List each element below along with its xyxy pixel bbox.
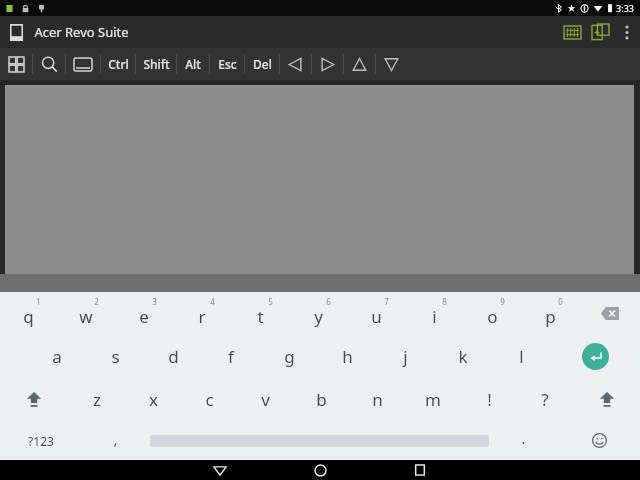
staticText: 0 <box>558 296 563 307</box>
staticText: t <box>257 305 264 328</box>
staticText: 6 <box>326 296 331 307</box>
button[interactable]: Home <box>270 460 370 480</box>
staticText: Alt <box>185 56 201 72</box>
button[interactable]: Up <box>344 48 375 80</box>
staticText: 4 <box>210 296 215 307</box>
staticText: ?123 <box>28 433 54 449</box>
button[interactable]: Search <box>33 48 65 80</box>
button[interactable]: Alt <box>177 48 209 80</box>
staticText: u <box>371 305 382 328</box>
staticText: Acer Revo Suite <box>34 23 129 41</box>
button[interactable]: i <box>405 292 463 335</box>
staticText: l <box>519 345 524 368</box>
button[interactable]: Emoji <box>558 421 640 460</box>
staticText: Ctrl <box>108 56 129 72</box>
button[interactable]: Keyboard <box>558 18 586 46</box>
button[interactable]: w <box>57 292 115 335</box>
staticText: d <box>168 345 179 368</box>
button[interactable]: , <box>81 421 150 460</box>
button[interactable]: o <box>463 292 521 335</box>
staticText: 3 <box>152 296 157 307</box>
button[interactable]: u <box>347 292 405 335</box>
button[interactable]: z <box>68 378 125 421</box>
staticText: Shift <box>143 56 170 72</box>
button[interactable]: Left <box>280 48 311 80</box>
staticText: 2 <box>94 296 99 307</box>
button[interactable]: Esc <box>210 48 244 80</box>
button[interactable]: p <box>521 292 579 335</box>
button[interactable]: Window <box>66 48 100 80</box>
staticText: w <box>79 305 93 328</box>
staticText: s <box>111 345 120 368</box>
button[interactable]: f <box>202 335 260 378</box>
button[interactable]: ?123 <box>0 421 81 460</box>
staticText: k <box>458 345 468 368</box>
button[interactable]: d <box>144 335 202 378</box>
button[interactable]: e <box>115 292 173 335</box>
button[interactable]: Shift <box>0 378 68 421</box>
button[interactable]: Back <box>170 460 270 480</box>
button[interactable]: l <box>492 335 550 378</box>
staticText: n <box>372 388 383 411</box>
button[interactable]: s <box>86 335 144 378</box>
button[interactable]: Down <box>376 48 407 80</box>
staticText: Esc <box>218 56 237 72</box>
button[interactable]: b <box>293 378 349 421</box>
staticText: 8 <box>442 296 447 307</box>
button[interactable]: Apps <box>0 48 32 80</box>
staticText: , <box>113 429 118 449</box>
button[interactable]: Del <box>245 48 279 80</box>
staticText: v <box>261 388 270 411</box>
staticText: g <box>284 345 295 368</box>
button[interactable]: h <box>318 335 376 378</box>
button[interactable]: Shift <box>136 48 176 80</box>
button[interactable]: More options <box>614 19 640 45</box>
button[interactable]: Enter <box>550 335 640 378</box>
staticText: i <box>432 305 437 328</box>
button[interactable]: k <box>434 335 492 378</box>
staticText: b <box>316 388 327 411</box>
staticText: y <box>314 305 323 328</box>
button[interactable]: Space <box>150 421 489 460</box>
button[interactable]: Ctrl <box>101 48 135 80</box>
button[interactable]: Window <box>586 18 614 46</box>
button[interactable]: c <box>181 378 237 421</box>
button[interactable]: j <box>376 335 434 378</box>
button[interactable]: q <box>0 292 57 335</box>
button[interactable]: v <box>237 378 293 421</box>
staticText: 1 <box>36 296 41 307</box>
button[interactable]: t <box>231 292 289 335</box>
button[interactable]: ? <box>517 378 573 421</box>
staticText: 5 <box>268 296 273 307</box>
button[interactable]: m <box>405 378 461 421</box>
staticText: j <box>403 345 408 368</box>
staticText: ? <box>541 388 549 411</box>
button[interactable]: Right <box>312 48 343 80</box>
staticText: ! <box>487 388 492 411</box>
button[interactable]: y <box>289 292 347 335</box>
staticText: m <box>425 388 441 411</box>
button[interactable]: ! <box>461 378 517 421</box>
staticText: 3:33 <box>616 2 634 14</box>
button[interactable]: g <box>260 335 318 378</box>
staticText: o <box>487 305 498 328</box>
staticText: 9 <box>500 296 505 307</box>
button[interactable]: Recents <box>370 460 470 480</box>
staticText: z <box>93 388 101 411</box>
button[interactable]: a <box>28 335 86 378</box>
staticText: . <box>521 428 526 448</box>
staticText: x <box>149 388 158 411</box>
staticText: q <box>23 305 34 328</box>
button[interactable]: . <box>489 421 558 460</box>
button[interactable]: n <box>349 378 405 421</box>
staticText: f <box>228 345 234 368</box>
button[interactable]: r <box>173 292 231 335</box>
button[interactable]: Backspace <box>579 292 640 335</box>
staticText: c <box>205 388 214 411</box>
button[interactable]: Shift <box>573 378 640 421</box>
staticText: a <box>52 345 62 368</box>
staticText: 7 <box>384 296 389 307</box>
button[interactable]: x <box>125 378 181 421</box>
staticText: h <box>342 345 353 368</box>
staticText: r <box>198 305 206 328</box>
